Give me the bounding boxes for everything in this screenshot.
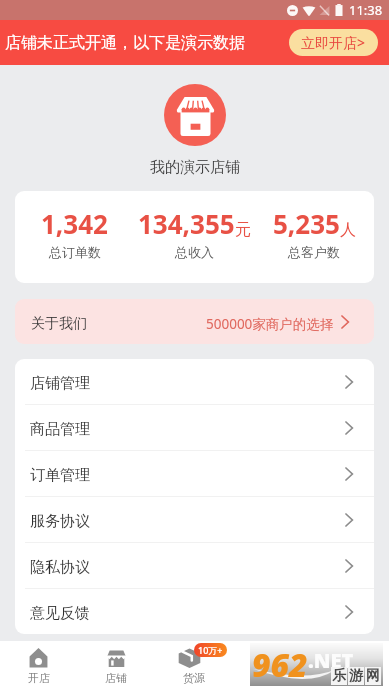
button[interactable]: 订单管理 — [15, 451, 374, 496]
staticText: 店铺未正式开通，以下是演示数据 — [5, 33, 245, 53]
staticText: 隐私协议 — [30, 558, 90, 577]
staticText: 商品管理 — [30, 420, 90, 439]
staticText: 500000家商户的选择 — [206, 315, 334, 333]
staticText: 11:38 — [349, 1, 383, 19]
staticText: 我的演示店铺 — [150, 158, 240, 177]
staticText: 关于我们 — [31, 315, 87, 333]
button[interactable]: 隐私协议 — [15, 543, 374, 588]
staticText: 5,235 — [273, 206, 340, 241]
staticText: 店铺 — [105, 671, 127, 685]
staticText: .NET — [308, 647, 354, 674]
staticText: 10万+ — [198, 644, 223, 656]
staticText: 元 — [235, 220, 251, 240]
staticText: 店铺管理 — [30, 374, 90, 393]
button[interactable]: 服务协议 — [15, 497, 374, 542]
button[interactable]: 关于我们 — [15, 299, 374, 344]
staticText: 1,342 — [41, 206, 108, 241]
staticText: 总订单数 — [49, 244, 101, 260]
staticText: 订单管理 — [30, 466, 90, 485]
staticText: 服务协议 — [30, 512, 90, 531]
button[interactable]: 商品管理 — [15, 405, 374, 450]
staticText: 意见反馈 — [30, 604, 90, 623]
staticText: 总客户数 — [288, 244, 340, 260]
staticText: 总收入 — [175, 244, 214, 260]
staticText: 立即开店> — [301, 33, 366, 52]
button[interactable]: 开店 — [0, 648, 77, 685]
staticText: 开店 — [28, 671, 50, 685]
staticText: 人 — [340, 220, 356, 240]
staticText: 962 — [252, 643, 308, 686]
staticText: 乐 — [332, 667, 346, 685]
button[interactable]: 立即开店> — [289, 29, 378, 56]
staticText: 游 — [349, 667, 363, 685]
staticText: 134,355 — [138, 206, 235, 241]
button[interactable]: 意见反馈 — [15, 589, 374, 634]
button[interactable]: 店铺 — [77, 648, 155, 685]
button[interactable]: 店铺管理 — [15, 359, 374, 404]
staticText: 网 — [366, 667, 380, 685]
staticText: 货源 — [183, 671, 205, 685]
button[interactable]: 货源 — [155, 648, 233, 685]
